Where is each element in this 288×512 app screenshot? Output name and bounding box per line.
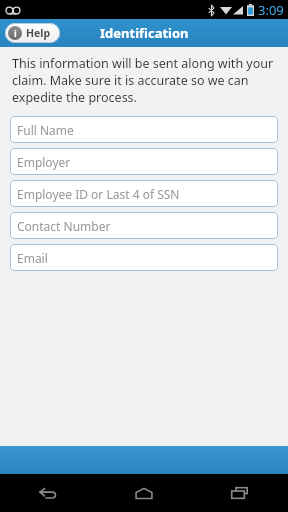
staticText: This information will be sent along with…	[12, 55, 274, 106]
staticText: Identification	[100, 24, 189, 42]
button[interactable]: Home	[96, 474, 192, 512]
staticText: Help	[26, 26, 51, 40]
button[interactable]: Employer	[10, 148, 278, 175]
staticText: Email	[17, 250, 48, 266]
button[interactable]: Full Name	[10, 116, 278, 143]
button[interactable]: Recent apps	[192, 474, 288, 512]
staticText: Employee ID or Last 4 of SSN	[17, 186, 180, 202]
staticText: Employer	[17, 154, 71, 170]
staticText: i	[14, 27, 17, 39]
button[interactable]: Email	[10, 244, 278, 271]
button[interactable]: Contact Number	[10, 212, 278, 239]
staticText: Full Name	[17, 122, 74, 138]
button[interactable]: Employee ID or Last 4 of SSN	[10, 180, 278, 207]
staticText: Contact Number	[17, 218, 111, 234]
button[interactable]: i	[5, 23, 60, 43]
button[interactable]: Back	[0, 474, 96, 512]
staticText: 3:09	[258, 1, 284, 19]
